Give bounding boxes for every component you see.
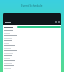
button[interactable] (3, 13, 61, 25)
button[interactable] (4, 29, 60, 34)
staticText: Event Schedule (21, 4, 43, 8)
button[interactable] (17, 26, 61, 28)
button[interactable] (4, 49, 60, 54)
button[interactable] (4, 39, 60, 44)
button[interactable] (4, 59, 60, 64)
button[interactable] (4, 54, 60, 59)
button[interactable] (4, 44, 60, 49)
button[interactable] (4, 34, 60, 39)
button[interactable] (4, 64, 60, 69)
